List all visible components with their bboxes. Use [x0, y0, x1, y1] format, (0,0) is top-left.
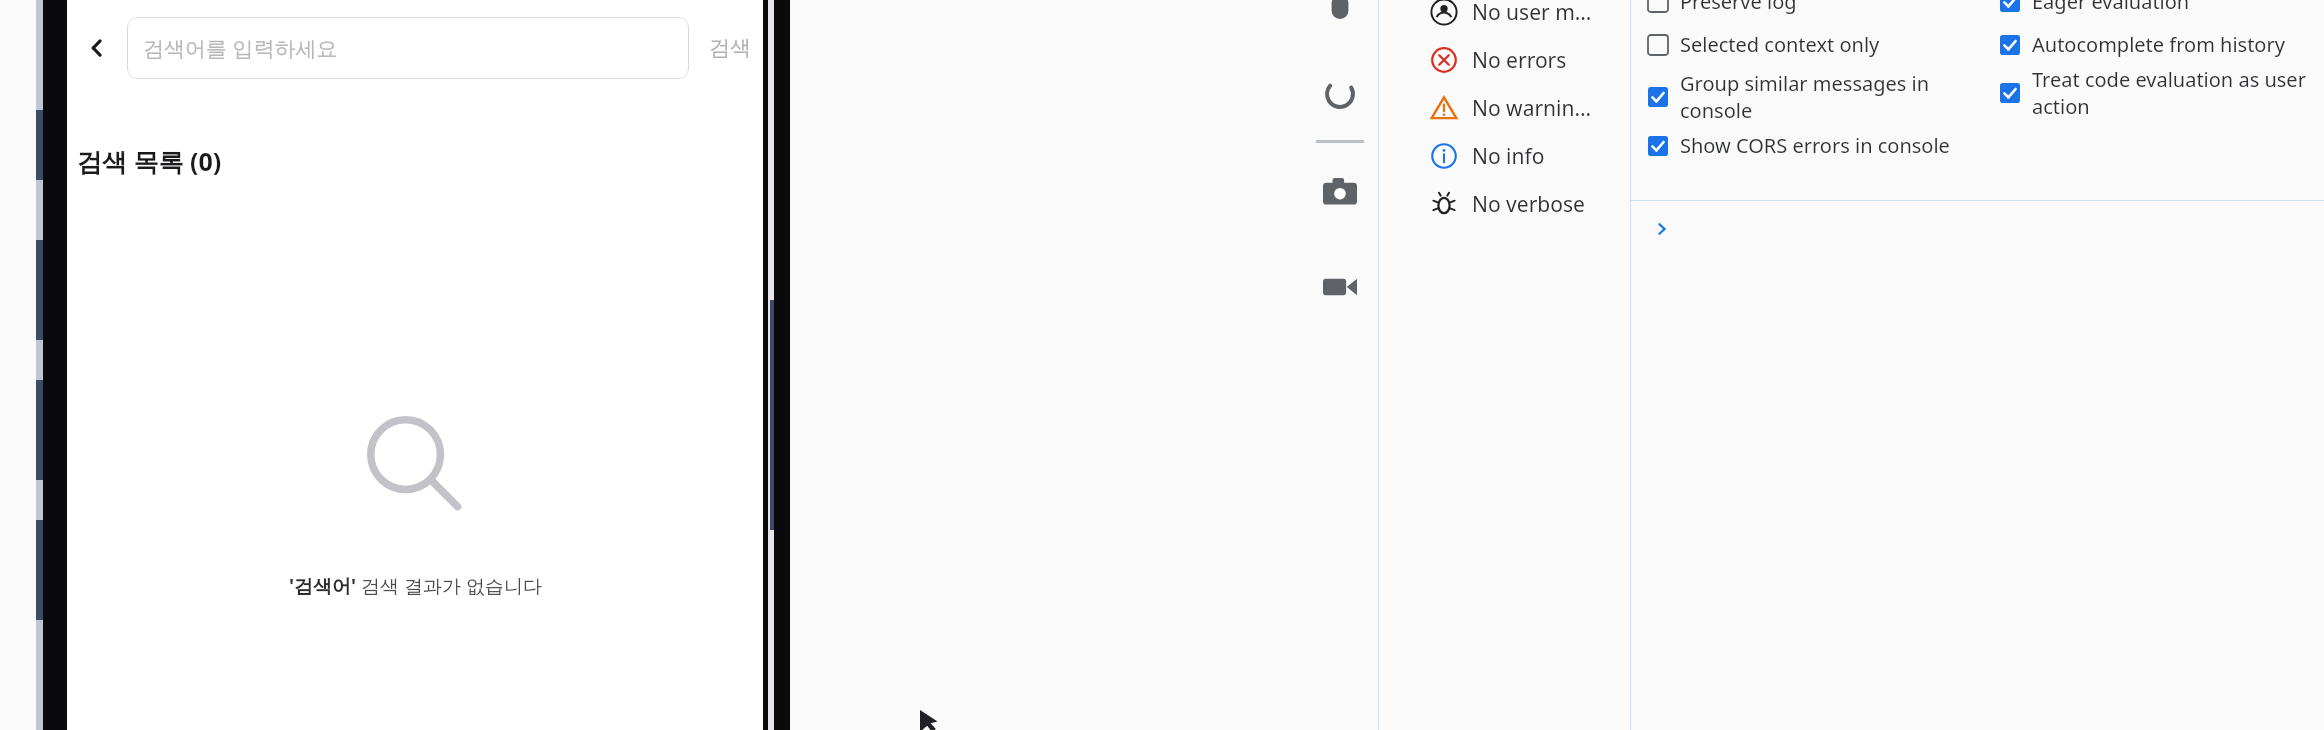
button[interactable]: Treat code evaluation as user action — [2000, 64, 2310, 122]
staticText: 검색 목록 (0) — [77, 144, 222, 178]
staticText: Autocomplete from history — [2032, 31, 2285, 58]
button[interactable]: No errors — [1430, 36, 1680, 84]
button[interactable]: No user m… — [1430, 0, 1680, 36]
button[interactable]: No verbose — [1430, 180, 1680, 228]
button[interactable]: 검색 — [703, 17, 757, 79]
staticText: Eager evaluation — [2032, 0, 2190, 15]
staticText: Preserve log — [1680, 0, 1797, 15]
button[interactable]: Back — [73, 24, 121, 72]
staticText: No user m… — [1472, 0, 1592, 27]
button[interactable]: No warnin… — [1430, 84, 1680, 132]
staticText: '검색어' 검색 결과가 없습니다 — [289, 573, 542, 599]
staticText: Group similar messages in console — [1680, 70, 1978, 124]
button[interactable]: Selected context only — [1648, 29, 1978, 60]
button[interactable]: Record video — [1312, 259, 1368, 315]
button[interactable]: No info — [1430, 132, 1680, 180]
staticText: Treat code evaluation as user action — [2032, 66, 2310, 120]
staticText: No warnin… — [1472, 94, 1592, 123]
staticText: No info — [1472, 142, 1545, 171]
button[interactable]: Reload — [1312, 66, 1368, 122]
button[interactable]: Preserve log — [1648, 0, 1978, 17]
button[interactable]: Show CORS errors in console — [1648, 130, 1978, 161]
button[interactable]: 검색어를 입력하세요 — [127, 17, 689, 79]
button[interactable]: Autocomplete from history — [2000, 29, 2310, 60]
button[interactable]: Group similar messages in console — [1648, 68, 1978, 126]
staticText: Show CORS errors in console — [1680, 132, 1950, 159]
button[interactable]: Screenshot — [1312, 165, 1368, 221]
staticText: No verbose — [1472, 190, 1585, 219]
staticText: No errors — [1472, 46, 1567, 75]
staticText: Selected context only — [1680, 31, 1880, 58]
button[interactable]: Expand — [1645, 212, 1679, 246]
button[interactable]: Eager evaluation — [2000, 0, 2310, 17]
staticText: 검색어를 입력하세요 — [143, 34, 338, 63]
button[interactable]: Record — [1312, 0, 1368, 38]
staticText: 검색 — [709, 35, 751, 61]
